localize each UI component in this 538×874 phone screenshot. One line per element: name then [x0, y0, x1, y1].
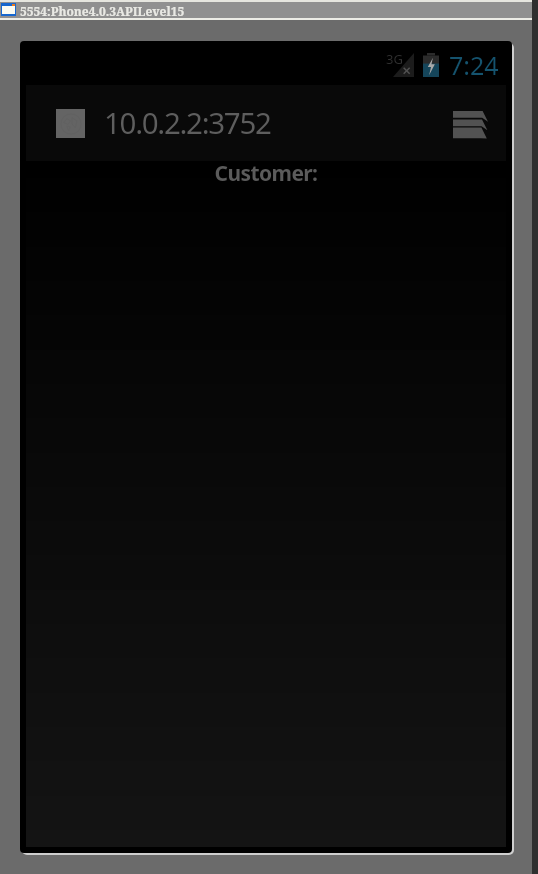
- staticText: 10.0.2.2:3752: [104, 102, 271, 142]
- staticText: Customer:: [26, 159, 506, 188]
- staticText: 5554:Phone4.0.3APILevel15: [20, 3, 185, 19]
- button[interactable]: More options: [443, 99, 498, 151]
- staticText: 3G: [386, 50, 403, 68]
- staticText: 7:24: [449, 48, 499, 82]
